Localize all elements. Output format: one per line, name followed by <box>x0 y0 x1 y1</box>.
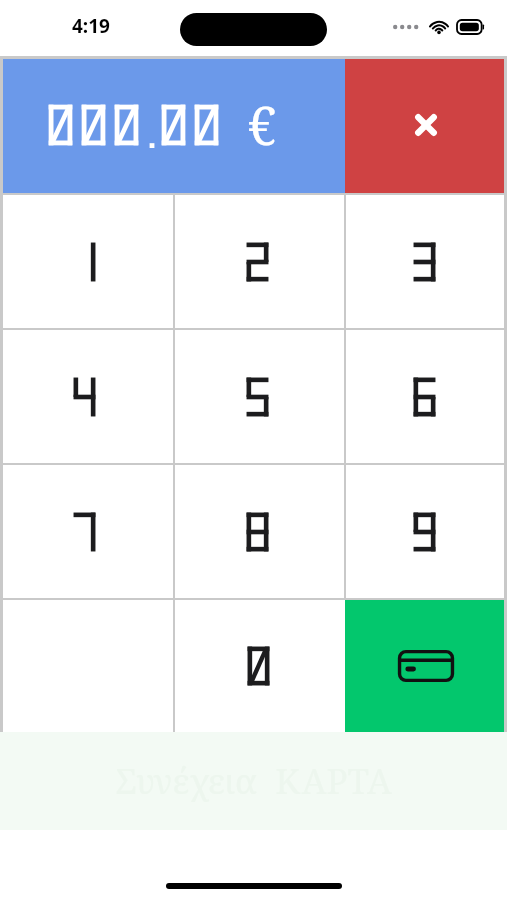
staticText: € <box>247 89 277 160</box>
button[interactable]: € <box>0 56 345 193</box>
button[interactable] <box>346 195 507 328</box>
button[interactable] <box>175 330 344 463</box>
button[interactable]: Clear <box>345 56 507 193</box>
button[interactable] <box>0 465 173 598</box>
button[interactable] <box>0 600 173 732</box>
button[interactable] <box>0 195 173 328</box>
button[interactable] <box>346 330 507 463</box>
button[interactable] <box>346 465 507 598</box>
staticText: 4:19 <box>72 13 110 39</box>
button[interactable] <box>175 600 345 732</box>
button[interactable] <box>175 465 344 598</box>
button[interactable] <box>175 195 344 328</box>
button[interactable] <box>0 330 173 463</box>
button[interactable]: Pay with card <box>345 600 507 732</box>
